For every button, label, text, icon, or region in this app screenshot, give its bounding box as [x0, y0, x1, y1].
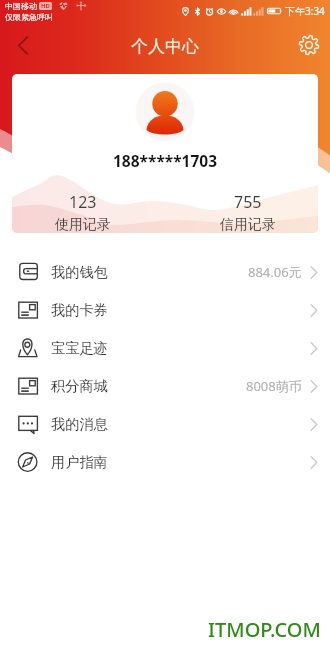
staticText: 8008萌币	[246, 377, 302, 395]
button[interactable]: 用户指南	[0, 443, 330, 481]
button[interactable]: 积分商城	[0, 367, 330, 405]
staticText: 仅限紧急呼叫	[5, 12, 53, 22]
button[interactable]: Settings	[286, 23, 330, 67]
button[interactable]: 123	[12, 191, 159, 233]
staticText: 用户指南	[51, 453, 108, 471]
button[interactable]: Back	[0, 23, 44, 67]
button[interactable]: 755	[171, 191, 318, 233]
button[interactable]: 我的钱包	[0, 253, 330, 291]
button[interactable]: 我的消息	[0, 405, 330, 443]
staticText: 个人中心	[131, 36, 199, 57]
staticText: 宝宝足迹	[51, 339, 108, 357]
staticText: 下午3:34	[285, 4, 325, 18]
staticText: 信用记录	[220, 216, 276, 233]
staticText: 755	[234, 191, 262, 213]
staticText: 积分商城	[51, 377, 108, 395]
button[interactable]: 宝宝足迹	[0, 329, 330, 367]
staticText: 884.06元	[248, 263, 302, 281]
staticText: ITMOP.COM	[208, 616, 321, 643]
staticText: 使用记录	[55, 216, 111, 233]
staticText: 我的钱包	[51, 263, 108, 281]
staticText: 我的卡券	[51, 301, 108, 319]
staticText: 188*****1703	[113, 150, 218, 171]
staticText: HD	[41, 2, 50, 10]
button[interactable]: 我的卡券	[0, 291, 330, 329]
staticText: 我的消息	[51, 415, 108, 433]
staticText: 中国移动	[5, 1, 37, 11]
staticText: 123	[69, 191, 97, 213]
